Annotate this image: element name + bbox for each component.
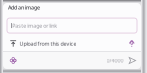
button[interactable]: Enhance prompt <box>8 55 18 66</box>
button[interactable]: Upload from this device <box>8 39 78 48</box>
staticText: Upload from this device <box>19 40 76 47</box>
button[interactable]: Send <box>127 55 138 66</box>
staticText: Paste image or link <box>12 22 57 29</box>
button[interactable]: Dictate <box>128 39 136 48</box>
staticText: Add an image <box>8 4 40 11</box>
staticText: 0/4000 <box>107 57 124 64</box>
